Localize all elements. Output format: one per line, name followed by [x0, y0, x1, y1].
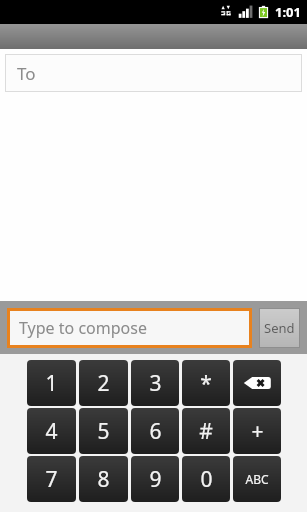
staticText: Send: [264, 319, 295, 337]
button[interactable]: 8: [79, 456, 128, 502]
staticText: To: [17, 62, 36, 85]
button[interactable]: 5: [79, 408, 128, 454]
staticText: ABC: [245, 471, 269, 487]
button[interactable]: Type to compose: [10, 311, 249, 345]
staticText: 6: [149, 417, 162, 446]
staticText: #: [199, 417, 213, 446]
button[interactable]: Send: [259, 308, 300, 348]
button[interactable]: 1: [27, 360, 76, 406]
staticText: 1: [45, 369, 58, 398]
staticText: 2: [97, 369, 110, 398]
staticText: Type to compose: [19, 317, 147, 339]
button[interactable]: 9: [131, 456, 179, 502]
button[interactable]: 3: [131, 360, 179, 406]
staticText: 1:01: [275, 3, 301, 21]
button[interactable]: +: [233, 408, 281, 454]
button[interactable]: 0: [182, 456, 230, 502]
button[interactable]: 4: [27, 408, 76, 454]
staticText: 0: [200, 465, 213, 494]
button[interactable]: To: [5, 54, 302, 92]
button[interactable]: Backspace: [233, 360, 281, 406]
button[interactable]: 7: [27, 456, 76, 502]
staticText: +: [251, 417, 264, 446]
button[interactable]: 2: [79, 360, 128, 406]
staticText: 3: [149, 369, 162, 398]
button[interactable]: #: [182, 408, 230, 454]
staticText: 5: [97, 417, 110, 446]
button[interactable]: 6: [131, 408, 179, 454]
staticText: 7: [45, 465, 58, 494]
button[interactable]: *: [182, 360, 230, 406]
staticText: 9: [149, 465, 162, 494]
button[interactable]: ABC: [233, 456, 281, 502]
staticText: 8: [97, 465, 110, 494]
staticText: *: [200, 369, 212, 398]
staticText: 4: [45, 417, 58, 446]
